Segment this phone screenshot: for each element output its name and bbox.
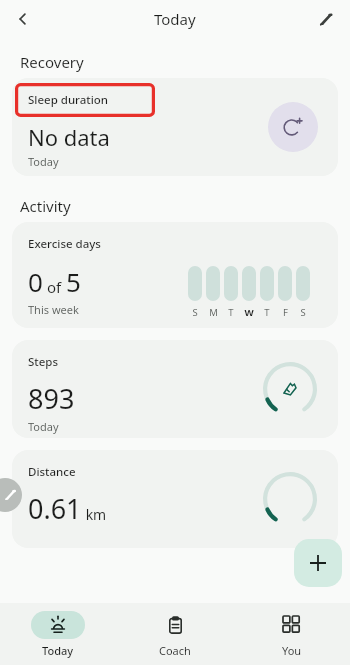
staticText: Today [42, 643, 74, 658]
staticText: Coach [159, 643, 191, 658]
button[interactable]: Steps [12, 340, 338, 438]
staticText: No data [28, 122, 110, 152]
staticText: 0 [28, 264, 43, 299]
staticText: Distance [28, 464, 76, 480]
button[interactable]: Distance [12, 450, 338, 548]
staticText: W [244, 306, 254, 319]
staticText: This week [28, 302, 79, 317]
staticText: T [264, 306, 270, 319]
staticText: Today [28, 419, 59, 434]
staticText: You [282, 643, 302, 658]
button[interactable]: Edit [308, 2, 342, 36]
staticText: Activity [20, 196, 71, 216]
button[interactable]: Today [0, 603, 116, 665]
staticText: 893 [28, 380, 75, 417]
staticText: Exercise days [28, 236, 101, 252]
staticText: Today [154, 9, 196, 29]
button[interactable]: Exercise days [12, 222, 338, 328]
staticText: Sleep duration [28, 92, 109, 108]
button[interactable]: Add [294, 539, 342, 587]
button[interactable]: Back [6, 2, 40, 36]
staticText: Steps [28, 354, 59, 370]
staticText: 5 [66, 264, 81, 299]
staticText: Today [28, 154, 59, 169]
staticText: of [43, 277, 66, 297]
staticText: S [192, 306, 198, 319]
staticText: 0.61 [28, 490, 82, 527]
staticText: S [300, 306, 306, 319]
button[interactable]: Coach [116, 603, 233, 665]
button[interactable]: You [233, 603, 350, 665]
staticText: T [228, 306, 234, 319]
staticText: F [283, 306, 288, 319]
button[interactable]: Sleep duration [12, 78, 338, 176]
staticText: km [82, 505, 107, 524]
staticText: Recovery [20, 52, 84, 72]
staticText: M [209, 306, 218, 319]
button[interactable]: Edit overlay [0, 478, 22, 512]
